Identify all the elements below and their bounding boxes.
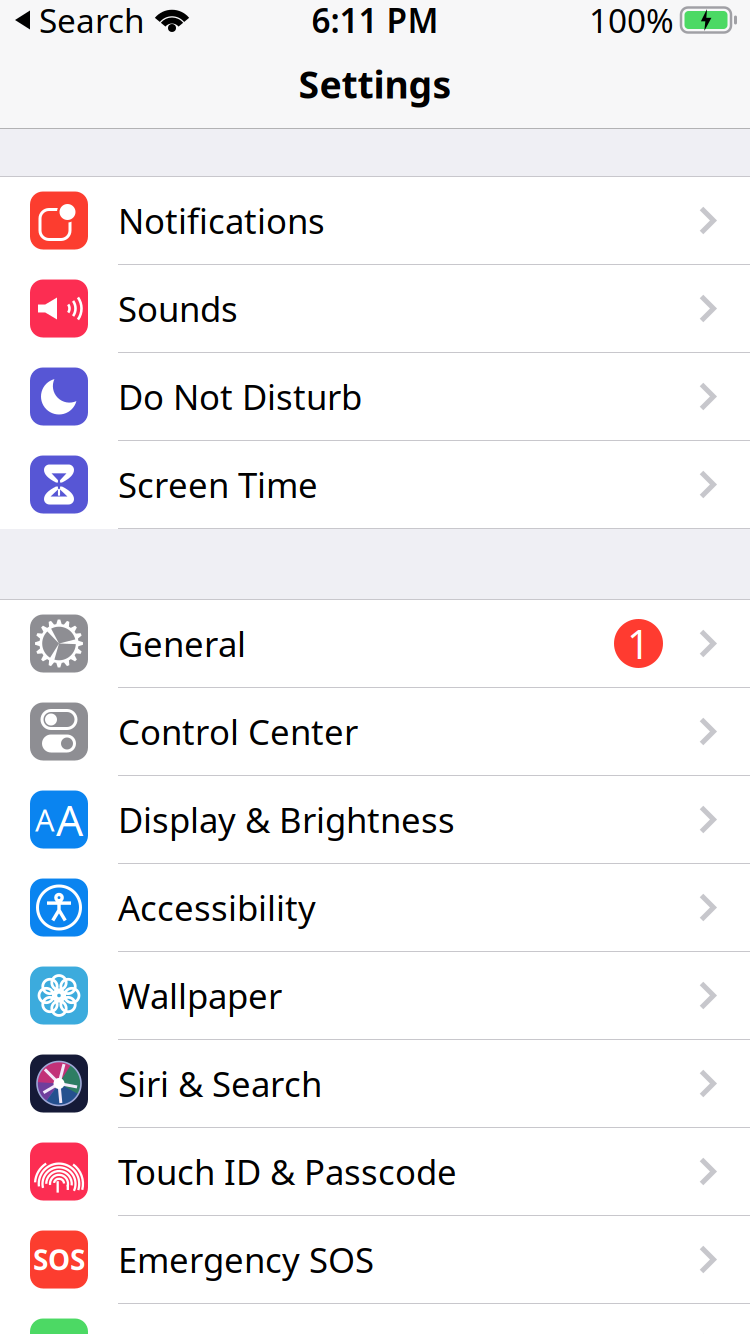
staticText: Sounds	[118, 285, 238, 331]
staticText: 1	[627, 617, 650, 670]
staticText: Notifications	[118, 197, 325, 243]
staticText: Control Center	[118, 708, 358, 754]
button[interactable]: Control Center	[0, 688, 750, 776]
button[interactable]: Sounds	[0, 265, 750, 353]
staticText: Wallpaper	[118, 972, 282, 1018]
button[interactable]: Accessibility	[0, 864, 750, 952]
staticText: 6:11 PM	[311, 0, 438, 42]
button[interactable]: Battery	[0, 1304, 750, 1334]
staticText: A	[35, 799, 55, 840]
button[interactable]: Do Not Disturb	[0, 353, 750, 441]
button[interactable]: Notifications	[0, 177, 750, 265]
button[interactable]: A	[0, 776, 750, 864]
staticText: Siri & Search	[118, 1060, 322, 1106]
button[interactable]: Touch ID & Passcode	[0, 1128, 750, 1216]
staticText: General	[118, 620, 246, 666]
staticText: 100%	[589, 0, 674, 42]
button[interactable]: Siri & Search	[0, 1040, 750, 1128]
button[interactable]: Screen Time	[0, 441, 750, 529]
staticText: Emergency SOS	[118, 1236, 374, 1282]
staticText: Display & Brightness	[118, 796, 455, 842]
staticText: Search	[30, 0, 145, 42]
staticText: Do Not Disturb	[118, 373, 362, 419]
staticText: Accessibility	[118, 884, 316, 930]
staticText: Settings	[298, 59, 451, 109]
staticText: Touch ID & Passcode	[118, 1148, 457, 1194]
staticText: SOS	[33, 1241, 85, 1278]
staticText: Screen Time	[118, 461, 318, 507]
staticText: A	[56, 791, 83, 848]
button[interactable]: Wallpaper	[0, 952, 750, 1040]
button[interactable]: SOS	[0, 1216, 750, 1304]
button[interactable]: General	[0, 600, 750, 688]
